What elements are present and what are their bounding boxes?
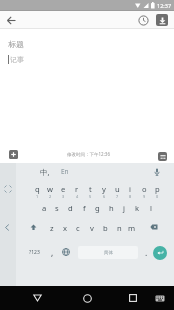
staticText: 简体: [104, 250, 113, 256]
button[interactable]: [150, 145, 174, 163]
button[interactable]: [26, 286, 48, 310]
staticText: ?123: [29, 249, 40, 256]
staticText: c: [76, 223, 80, 233]
staticText: i: [129, 184, 131, 194]
staticText: l: [150, 203, 152, 213]
staticText: z: [50, 223, 54, 233]
staticText: s: [55, 203, 59, 213]
staticText: 12:37: [157, 2, 172, 9]
button[interactable]: [146, 219, 162, 235]
staticText: 0: [156, 194, 159, 199]
staticText: k: [135, 203, 140, 213]
staticText: 3: [62, 194, 65, 199]
staticText: g: [95, 203, 100, 213]
staticText: 2: [49, 194, 52, 199]
button[interactable]: [152, 11, 172, 29]
staticText: f: [83, 203, 86, 213]
staticText: m: [128, 223, 136, 233]
button[interactable]: [150, 286, 170, 310]
staticText: x: [63, 223, 68, 233]
staticText: p: [155, 184, 160, 194]
staticText: 9: [143, 194, 146, 199]
staticText: 6: [103, 194, 106, 199]
staticText: 5: [89, 194, 92, 199]
staticText: q: [35, 184, 40, 194]
staticText: v: [90, 223, 94, 233]
button[interactable]: En: [56, 163, 74, 180]
staticText: e: [61, 184, 66, 194]
button[interactable]: [134, 11, 152, 29]
button[interactable]: 中,: [34, 163, 56, 180]
staticText: 中,: [40, 167, 50, 177]
staticText: .: [145, 247, 148, 259]
staticText: u: [115, 184, 120, 194]
staticText: b: [103, 223, 108, 233]
staticText: o: [142, 184, 147, 194]
button[interactable]: [25, 219, 41, 235]
staticText: 4: [76, 194, 79, 199]
button[interactable]: [122, 286, 144, 310]
button[interactable]: [58, 244, 74, 260]
staticText: t: [89, 184, 92, 194]
staticText: h: [109, 203, 114, 213]
staticText: n: [117, 223, 122, 233]
staticText: En: [61, 167, 69, 176]
staticText: w: [47, 184, 53, 194]
staticText: 8: [129, 194, 132, 199]
button[interactable]: [148, 163, 165, 180]
button[interactable]: 简体: [78, 246, 138, 259]
staticText: ,: [51, 247, 54, 259]
staticText: 7: [116, 194, 119, 199]
staticText: a: [42, 203, 47, 213]
staticText: y: [102, 184, 106, 194]
button[interactable]: ?123: [24, 244, 44, 260]
button[interactable]: [76, 286, 98, 310]
staticText: d: [68, 203, 73, 213]
staticText: r: [75, 184, 79, 194]
staticText: 记事: [10, 55, 24, 64]
button[interactable]: [0, 11, 22, 29]
button[interactable]: [153, 246, 167, 260]
staticText: 修改时间：下午12:36: [67, 151, 111, 157]
button[interactable]: [0, 145, 26, 163]
staticText: j: [123, 203, 125, 213]
staticText: 1: [36, 194, 39, 199]
staticText: 标题: [8, 39, 24, 49]
